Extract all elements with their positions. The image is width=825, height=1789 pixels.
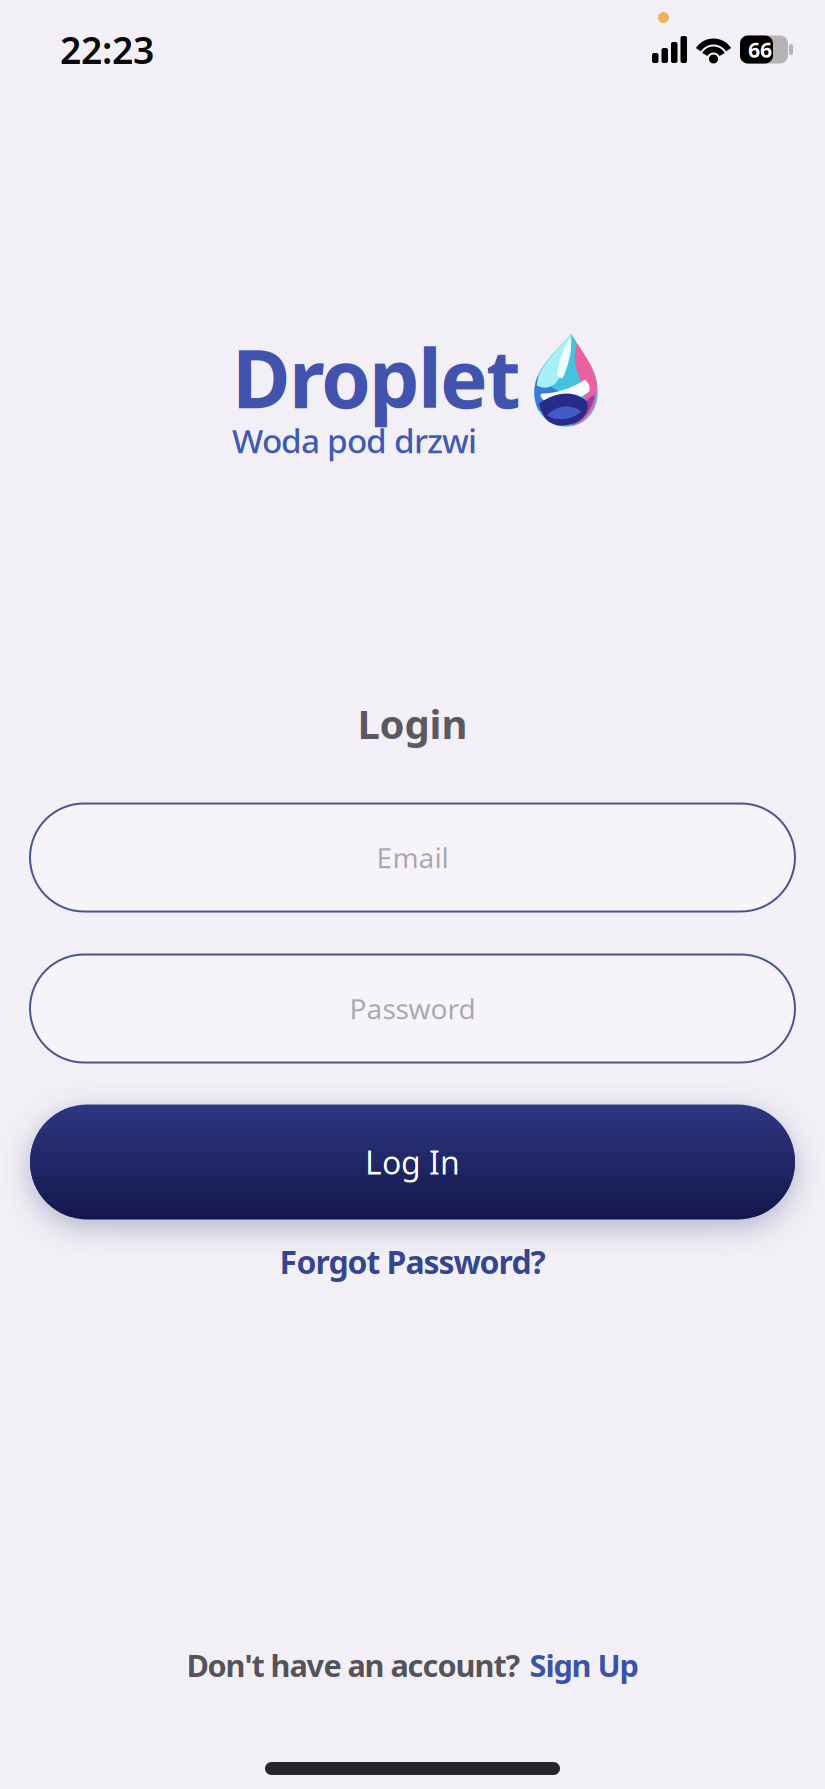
button[interactable]: Sign Up [529,1645,638,1685]
button[interactable]: Log In [30,1104,795,1219]
staticText: Don't have an account? [186,1645,520,1685]
staticText: Droplet [232,324,521,430]
staticText: 22:23 [60,25,154,74]
staticText: Woda pod drzwi [232,418,477,462]
button[interactable]: Email [30,803,795,911]
staticText: Password [349,990,475,1027]
staticText: Forgot Password? [279,1240,545,1283]
staticText: Email [376,839,448,876]
button[interactable]: Password [30,954,795,1062]
button[interactable]: Forgot Password? [279,1241,545,1281]
staticText: Login [357,697,467,750]
staticText: Sign Up [529,1645,638,1685]
staticText: 66 [748,35,772,64]
staticText: Log In [365,1141,460,1183]
